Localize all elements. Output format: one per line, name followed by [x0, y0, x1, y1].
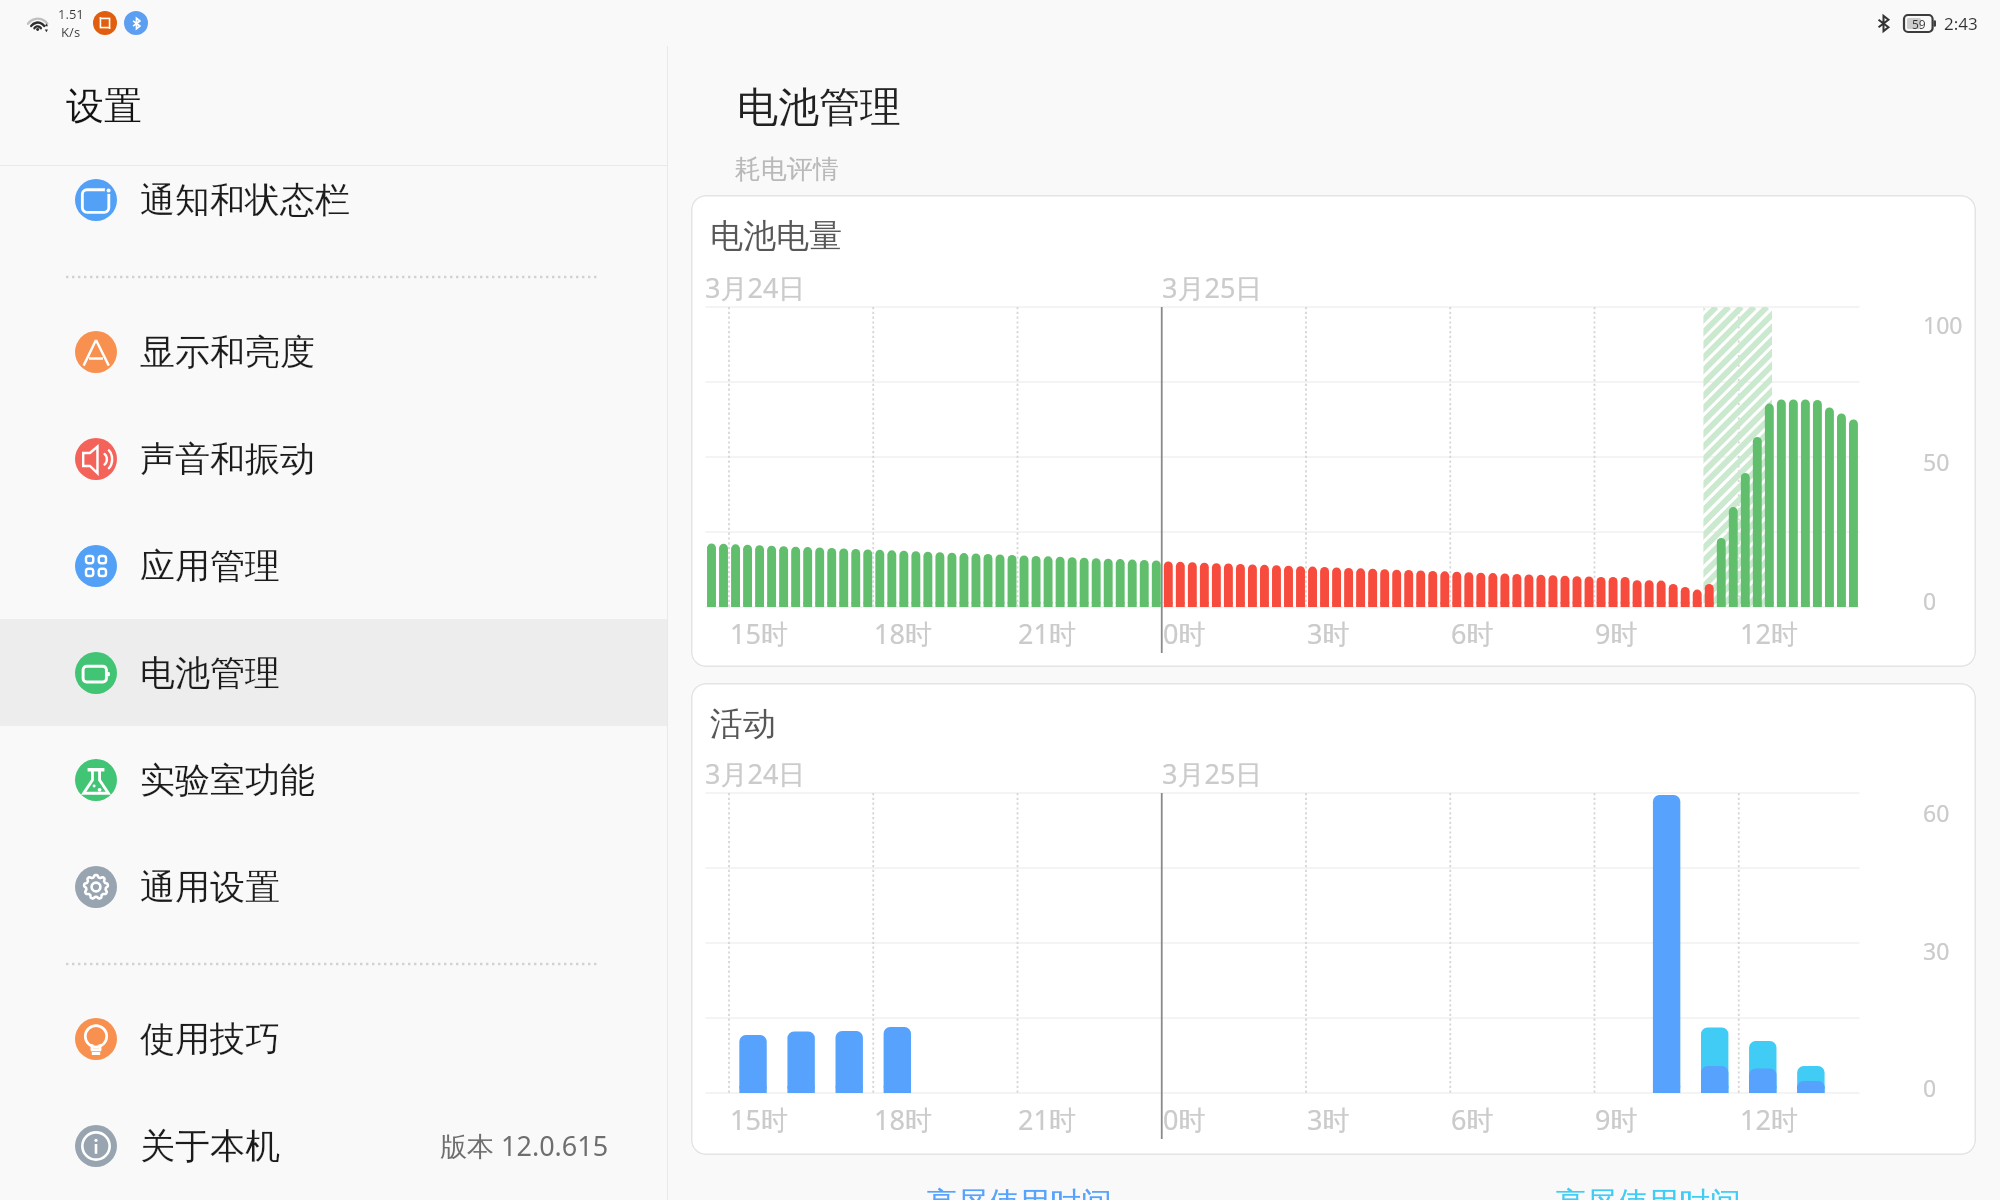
staticText: 使用技巧 [140, 1017, 280, 1061]
button[interactable]: 亮屏使用时间 [1555, 1184, 1741, 1200]
staticText: 电池管理 [140, 651, 280, 695]
staticText: 6时 [1451, 615, 1494, 652]
staticText: 12时 [1740, 615, 1798, 652]
staticText: 3月25日 [1162, 269, 1263, 306]
staticText: 显示和亮度 [140, 330, 315, 374]
staticText: 30 [1923, 935, 1950, 966]
button[interactable]: Bluetooth [124, 11, 148, 35]
button[interactable]: 显示和亮度 [0, 298, 667, 405]
staticText: 通用设置 [140, 865, 280, 909]
staticText: 关于本机 [140, 1124, 280, 1168]
staticText: K/s [61, 23, 81, 41]
staticText: 60 [1923, 797, 1950, 828]
staticText: 9时 [1595, 615, 1638, 652]
staticText: 电池电量 [710, 215, 842, 257]
staticText: 3时 [1307, 615, 1350, 652]
button[interactable]: 实验室功能 [0, 726, 667, 833]
staticText: 59 [1912, 16, 1926, 32]
staticText: 12时 [1740, 1101, 1798, 1138]
staticText: 1.51 [58, 5, 84, 23]
staticText: 21时 [1018, 615, 1076, 652]
staticText: 2:43 [1944, 12, 1978, 35]
button[interactable]: 通知和状态栏 [0, 146, 667, 253]
button[interactable]: 亮屏使用时间 [926, 1184, 1112, 1200]
staticText: 设置 [66, 82, 142, 130]
staticText: 15时 [730, 615, 788, 652]
button[interactable]: 通用设置 [0, 833, 667, 940]
button[interactable]: 应用管理 [0, 512, 667, 619]
button[interactable]: 声音和振动 [0, 405, 667, 512]
staticText: 18时 [874, 615, 932, 652]
button[interactable]: Screenshot [93, 11, 117, 35]
staticText: 18时 [874, 1101, 932, 1138]
staticText: 版本 12.0.615 [440, 1127, 609, 1164]
staticText: 3月24日 [705, 755, 806, 792]
staticText: 电池管理 [737, 82, 901, 134]
staticText: 15时 [730, 1101, 788, 1138]
button[interactable]: 使用技巧 [0, 985, 667, 1092]
button[interactable]: 关于本机 [0, 1092, 667, 1199]
staticText: 实验室功能 [140, 758, 315, 802]
staticText: 50 [1923, 446, 1950, 477]
staticText: 亮屏使用时间 [1555, 1184, 1741, 1200]
staticText: 声音和振动 [140, 437, 315, 481]
staticText: 100 [1923, 309, 1963, 340]
staticText: 0时 [1163, 615, 1206, 652]
button[interactable]: 电池管理 [0, 619, 667, 726]
staticText: 0 [1923, 1072, 1937, 1103]
staticText: 0时 [1163, 1101, 1206, 1138]
staticText: 3月24日 [705, 269, 806, 306]
staticText: 6时 [1451, 1101, 1494, 1138]
staticText: 3时 [1307, 1101, 1350, 1138]
staticText: 应用管理 [140, 544, 280, 588]
staticText: 亮屏使用时间 [926, 1184, 1112, 1200]
staticText: 9时 [1595, 1101, 1638, 1138]
staticText: 通知和状态栏 [140, 178, 350, 222]
staticText: 活动 [710, 703, 776, 745]
staticText: 0 [1923, 585, 1937, 616]
staticText: 3月25日 [1162, 755, 1263, 792]
staticText: 耗电评情 [735, 153, 839, 186]
staticText: 21时 [1018, 1101, 1076, 1138]
